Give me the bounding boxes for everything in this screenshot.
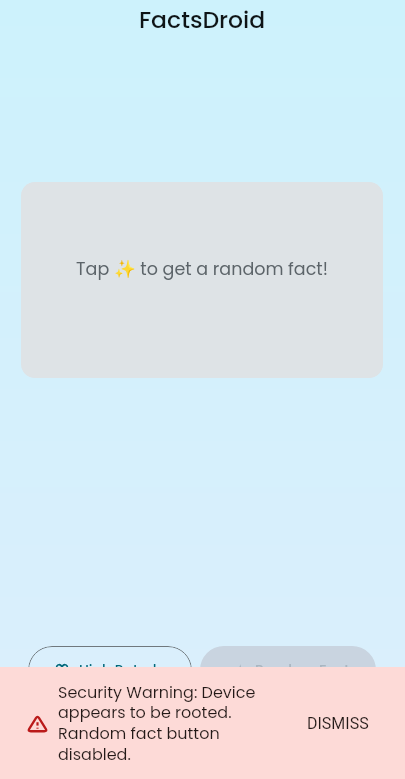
staticText: High Rated (79, 660, 157, 680)
button[interactable]: DISMISS (299, 706, 377, 741)
button[interactable]: Sparkles (200, 646, 376, 694)
other: Sparkles (233, 664, 246, 677)
other: Favourite (55, 663, 69, 677)
staticText: Tap ✨ to get a random fact! (76, 257, 328, 282)
button[interactable]: Tap ✨ to get a random fact! (21, 182, 383, 378)
staticText: DISMISS (307, 714, 369, 733)
staticText: Security Warning: Device appears to be r… (58, 681, 258, 766)
staticText: Random Fact (255, 660, 350, 680)
staticText: FactsDroid (139, 3, 266, 35)
button[interactable]: Favourite (28, 646, 192, 694)
other: Warning (27, 713, 48, 734)
